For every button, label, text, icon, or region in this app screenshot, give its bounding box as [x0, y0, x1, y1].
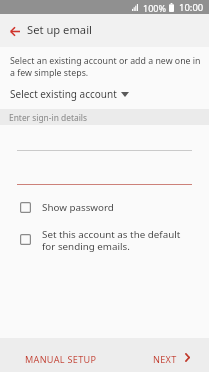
staticText: Set up email	[27, 22, 92, 37]
button[interactable]: Show password	[0, 202, 209, 215]
staticText: Select existing account	[10, 87, 117, 101]
staticText: Show password	[42, 201, 114, 214]
button[interactable]: Select existing account	[0, 86, 209, 102]
staticText: Enter sign-in details	[9, 112, 87, 123]
button[interactable]: Back	[0, 14, 28, 47]
staticText: Set this account as the default for send…	[42, 228, 181, 253]
button[interactable]: Set this account as the default for send…	[0, 234, 209, 260]
staticText: 10:00	[179, 1, 204, 14]
button[interactable]: NEXT	[133, 338, 203, 372]
staticText: NEXT	[153, 353, 177, 365]
staticText: 100%	[143, 2, 166, 14]
staticText: Select an existing account or add a new …	[10, 55, 201, 78]
staticText: MANUAL SETUP	[25, 353, 97, 365]
button[interactable]: MANUAL SETUP	[12, 338, 112, 372]
